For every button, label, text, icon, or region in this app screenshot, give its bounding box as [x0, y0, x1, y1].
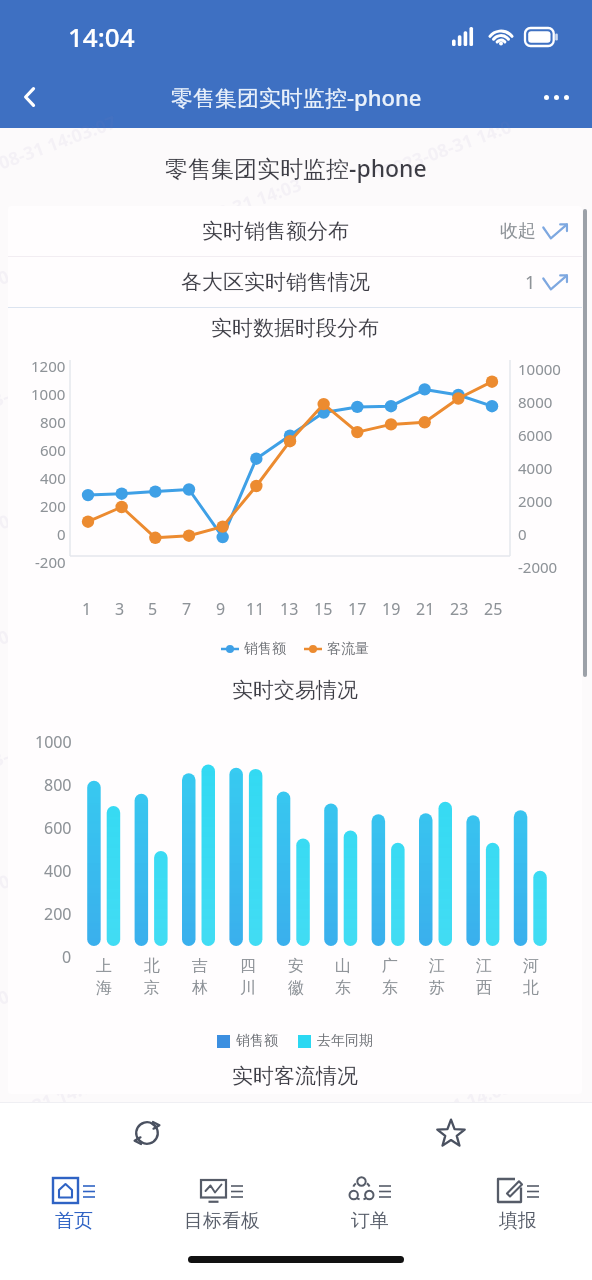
button[interactable]: 目标看板 — [148, 1178, 296, 1233]
staticText: 去年同期 — [317, 1032, 373, 1050]
staticText: 零售集团实时监控-phone — [165, 152, 427, 183]
staticText: 2023-08-31 14:03 — [0, 594, 95, 667]
staticText: 19 — [382, 598, 401, 620]
staticText: 14:04 — [68, 19, 135, 54]
staticText: 5 — [148, 598, 158, 620]
button[interactable]: More options — [532, 73, 580, 121]
staticText: 23 — [450, 598, 469, 620]
staticText: -200 — [35, 552, 66, 572]
staticText: 吉林 — [191, 956, 209, 998]
button[interactable]: Refresh — [124, 1110, 170, 1156]
staticText: 实时交易情况 — [232, 677, 358, 703]
staticText: 3 — [115, 598, 125, 620]
staticText: 实时销售额分布 — [202, 218, 349, 244]
staticText: 800 — [44, 774, 72, 796]
staticText: 安徽 — [287, 956, 305, 998]
staticText: 7 — [182, 598, 192, 620]
staticText: 2023-08-31 14:03 — [0, 954, 95, 1027]
staticText: 1000 — [35, 731, 72, 753]
button[interactable]: 实时销售额分布 — [8, 206, 582, 256]
staticText: 订单 — [351, 1209, 389, 1233]
staticText: 1200 — [31, 356, 66, 376]
staticText: 10000 — [518, 359, 561, 379]
staticText: 800 — [40, 412, 66, 432]
button[interactable]: 订单 — [296, 1178, 444, 1233]
staticText: 销售额 — [244, 640, 286, 658]
staticText: 15 — [314, 598, 333, 620]
staticText: 实时客流情况 — [232, 1063, 358, 1089]
staticText: 2023-08-31 14:03:07 — [161, 407, 330, 489]
staticText: 9 — [216, 598, 226, 620]
staticText: 实时数据时段分布 — [211, 315, 379, 341]
staticText: 2023-08-31 14:03 — [160, 172, 305, 245]
staticText: 6000 — [518, 425, 553, 445]
staticText: 600 — [44, 817, 72, 839]
staticText: 12023-08-31 14:0 — [160, 292, 305, 365]
staticText: 12023-08-31 14:0 — [370, 114, 515, 187]
staticText: 首页 — [55, 1209, 93, 1233]
staticText: 21 — [416, 598, 435, 620]
staticText: 零售集团实时监控-phone — [171, 82, 422, 112]
staticText: 目标看板 — [184, 1209, 260, 1233]
staticText: 广东 — [381, 956, 399, 998]
staticText: 2023-08-31 14:03:07 — [161, 767, 330, 849]
staticText: 江苏 — [428, 956, 446, 998]
staticText: 2023-08-31 14:03 — [370, 354, 515, 427]
staticText: 收起 — [500, 220, 536, 243]
staticText: 2023-08-31 14:03 — [160, 892, 305, 965]
staticText: 400 — [44, 860, 72, 882]
staticText: 2023-08-31 14:03:07 — [0, 829, 120, 911]
staticText: 2023-08-31 14:03:07 — [161, 1127, 330, 1209]
button[interactable]: 各大区实时销售情况 — [8, 257, 582, 307]
staticText: 12023-08-31 14:0 — [0, 714, 95, 787]
staticText: 上海 — [95, 956, 113, 998]
staticText: 2023-08-31 14:03 — [370, 1074, 515, 1147]
staticText: 2023-08-31 14:03:07 — [371, 229, 540, 311]
staticText: 山东 — [334, 956, 352, 998]
staticText: 2023-08-31 14:03:07 — [0, 469, 120, 551]
staticText: 25 — [484, 598, 503, 620]
staticText: 12023-08-31 14:0 — [160, 652, 305, 725]
staticText: 2023-08-31 14:03:07 — [371, 589, 540, 671]
staticText: 11 — [246, 598, 265, 620]
staticText: 各大区实时销售情况 — [181, 269, 370, 295]
staticText: 江西 — [475, 956, 493, 998]
staticText: 2023-08-31 14:03:07 — [0, 109, 120, 191]
button[interactable]: Back — [6, 73, 54, 121]
staticText: 13 — [280, 598, 299, 620]
staticText: 2023-08-31 14:03:07 — [371, 949, 540, 1031]
staticText: 河北 — [522, 956, 540, 998]
button[interactable]: 填报 — [444, 1178, 592, 1233]
staticText: 填报 — [499, 1209, 537, 1233]
staticText: 销售额 — [236, 1032, 278, 1050]
staticText: 1 — [82, 598, 92, 620]
staticText: 0 — [518, 524, 527, 544]
staticText: -2000 — [518, 557, 558, 577]
staticText: 2000 — [518, 491, 553, 511]
staticText: 2023-08-31 14:03 — [160, 532, 305, 605]
staticText: 4000 — [518, 458, 553, 478]
staticText: 12023-08-31 14:0 — [370, 834, 515, 907]
staticText: 12023-08-31 14:0 — [160, 1012, 305, 1085]
staticText: 四川 — [239, 956, 257, 998]
staticText: 17 — [348, 598, 367, 620]
staticText: 客流量 — [327, 640, 369, 658]
staticText: 1000 — [31, 384, 66, 404]
staticText: 400 — [40, 468, 66, 488]
staticText: 1 — [525, 270, 536, 295]
staticText: 0 — [57, 524, 66, 544]
button[interactable]: Favorite — [428, 1110, 474, 1156]
staticText: 12023-08-31 14:0 — [0, 354, 95, 427]
staticText: 200 — [40, 496, 66, 516]
button[interactable]: 首页 — [0, 1178, 148, 1233]
staticText: 0 — [62, 946, 72, 968]
staticText: 8000 — [518, 392, 553, 412]
staticText: 北京 — [143, 956, 161, 998]
staticText: 600 — [40, 440, 66, 460]
staticText: 200 — [44, 903, 72, 925]
